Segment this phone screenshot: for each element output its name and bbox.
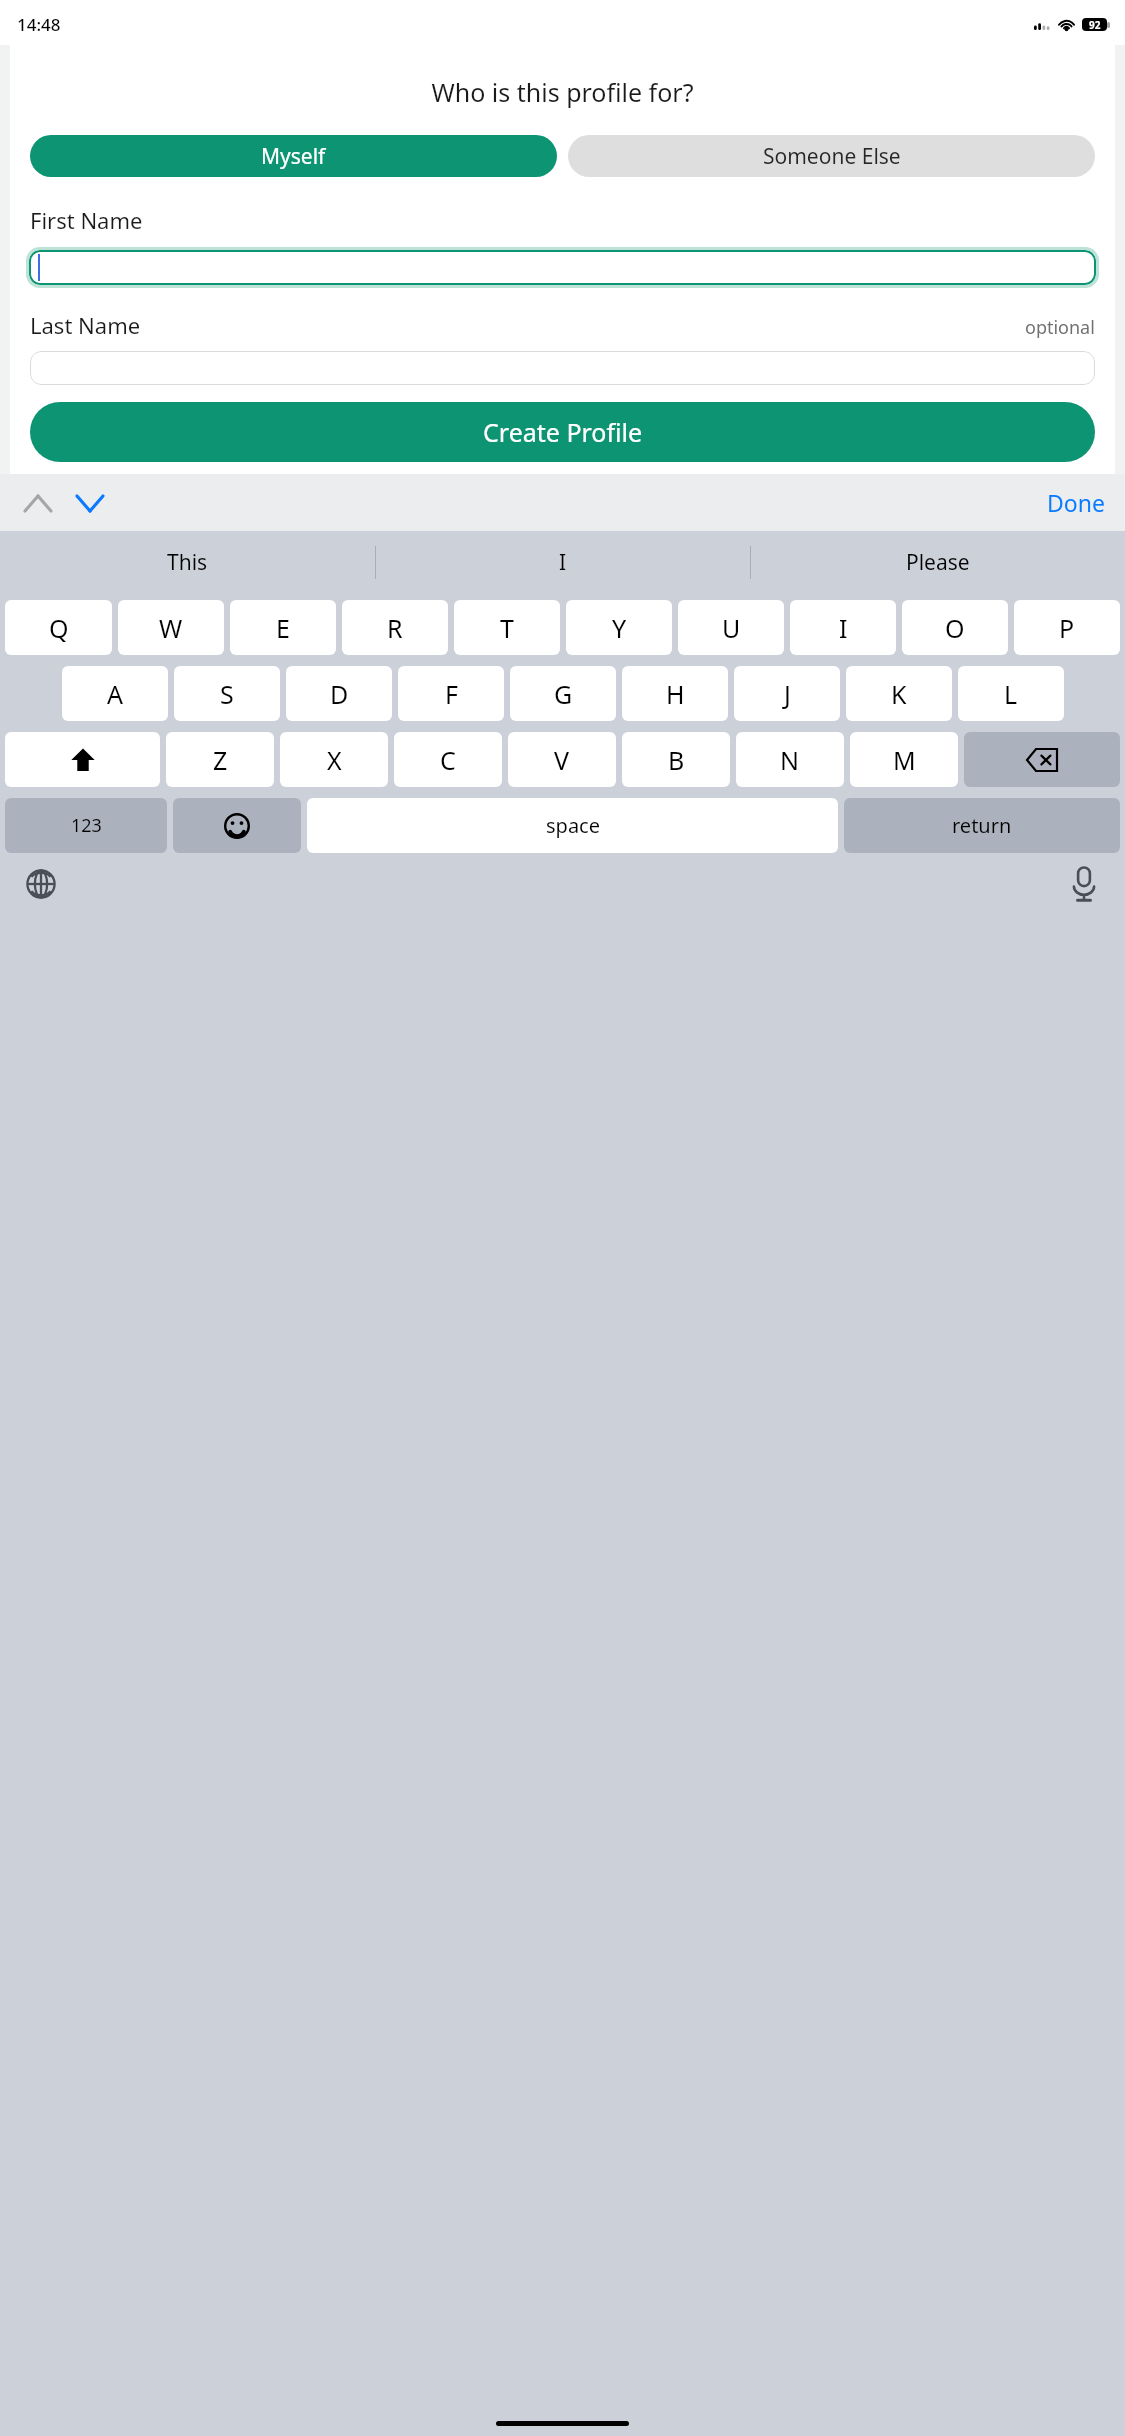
staticText: K bbox=[891, 677, 907, 711]
button[interactable]: T bbox=[454, 600, 560, 655]
button[interactable]: H bbox=[622, 666, 728, 721]
staticText: V bbox=[554, 743, 570, 777]
button[interactable]: M bbox=[850, 732, 958, 787]
button[interactable]: G bbox=[510, 666, 616, 721]
button[interactable]: S bbox=[174, 666, 280, 721]
button[interactable]: Change keyboard language bbox=[18, 861, 64, 907]
button[interactable]: Someone Else bbox=[568, 135, 1095, 177]
staticText: H bbox=[666, 677, 685, 711]
staticText: optional bbox=[1025, 315, 1095, 340]
button[interactable]: Delete bbox=[964, 732, 1120, 787]
button[interactable]: Y bbox=[566, 600, 672, 655]
staticText: I bbox=[839, 611, 848, 645]
staticText: Myself bbox=[261, 142, 326, 171]
button[interactable]: N bbox=[736, 732, 844, 787]
button[interactable]: K bbox=[846, 666, 952, 721]
staticText: 14:48 bbox=[17, 13, 61, 36]
button[interactable]: Next field bbox=[68, 481, 112, 525]
button[interactable] bbox=[30, 351, 1095, 385]
staticText: U bbox=[722, 611, 741, 645]
staticText: I bbox=[559, 548, 567, 577]
staticText: This bbox=[167, 548, 208, 577]
button[interactable]: Please bbox=[751, 531, 1125, 593]
staticText: Y bbox=[612, 611, 627, 645]
button[interactable]: I bbox=[790, 600, 896, 655]
button[interactable]: J bbox=[734, 666, 840, 721]
staticText: D bbox=[330, 677, 349, 711]
button[interactable]: A bbox=[62, 666, 168, 721]
staticText: First Name bbox=[30, 205, 143, 235]
staticText: A bbox=[107, 677, 123, 711]
staticText: T bbox=[500, 611, 514, 645]
button[interactable]: Dictation bbox=[1061, 861, 1107, 907]
staticText: Z bbox=[213, 743, 228, 777]
staticText: Last Name bbox=[30, 310, 141, 340]
button[interactable]: Emoji bbox=[173, 798, 301, 853]
staticText: F bbox=[445, 677, 458, 711]
button[interactable]: W bbox=[118, 600, 224, 655]
button[interactable]: space bbox=[307, 798, 838, 853]
staticText: M bbox=[893, 743, 916, 777]
button[interactable]: 123 bbox=[5, 798, 167, 853]
staticText: R bbox=[387, 611, 403, 645]
staticText: C bbox=[440, 743, 456, 777]
button[interactable]: Q bbox=[5, 600, 112, 655]
button[interactable]: B bbox=[622, 732, 730, 787]
button[interactable]: Shift bbox=[5, 732, 160, 787]
staticText: Q bbox=[49, 611, 69, 645]
button[interactable]: V bbox=[508, 732, 616, 787]
button[interactable]: X bbox=[280, 732, 388, 787]
button[interactable]: Create Profile bbox=[30, 402, 1095, 462]
button[interactable]: O bbox=[902, 600, 1008, 655]
staticText: P bbox=[1059, 611, 1075, 645]
staticText: J bbox=[784, 677, 791, 711]
button[interactable]: Previous field bbox=[16, 481, 60, 525]
button[interactable]: L bbox=[958, 666, 1064, 721]
button[interactable]: C bbox=[394, 732, 502, 787]
staticText: return bbox=[952, 812, 1012, 839]
staticText: N bbox=[780, 743, 800, 777]
staticText: E bbox=[276, 611, 290, 645]
button[interactable]: This bbox=[0, 531, 375, 593]
staticText: Someone Else bbox=[763, 142, 901, 171]
button[interactable]: D bbox=[286, 666, 392, 721]
staticText: 92 bbox=[1089, 18, 1101, 31]
staticText: space bbox=[546, 812, 600, 839]
button[interactable]: I bbox=[376, 531, 750, 593]
button[interactable]: F bbox=[398, 666, 504, 721]
staticText: 123 bbox=[71, 813, 102, 838]
button[interactable] bbox=[29, 250, 1096, 285]
button[interactable]: Done bbox=[1039, 481, 1113, 524]
staticText: W bbox=[159, 611, 183, 645]
staticText: S bbox=[220, 677, 234, 711]
button[interactable]: Myself bbox=[30, 135, 557, 177]
staticText: X bbox=[327, 743, 342, 777]
button[interactable]: P bbox=[1014, 600, 1120, 655]
button[interactable]: return bbox=[844, 798, 1120, 853]
staticText: O bbox=[945, 611, 965, 645]
staticText: Done bbox=[1047, 487, 1105, 518]
staticText: Please bbox=[906, 548, 970, 577]
staticText: L bbox=[1004, 677, 1018, 711]
staticText: B bbox=[668, 743, 685, 777]
button[interactable]: U bbox=[678, 600, 784, 655]
staticText: Create Profile bbox=[483, 415, 643, 449]
button[interactable]: E bbox=[230, 600, 336, 655]
staticText: Who is this profile for? bbox=[10, 75, 1115, 109]
button[interactable]: R bbox=[342, 600, 448, 655]
staticText: G bbox=[554, 677, 573, 711]
button[interactable]: Z bbox=[166, 732, 274, 787]
